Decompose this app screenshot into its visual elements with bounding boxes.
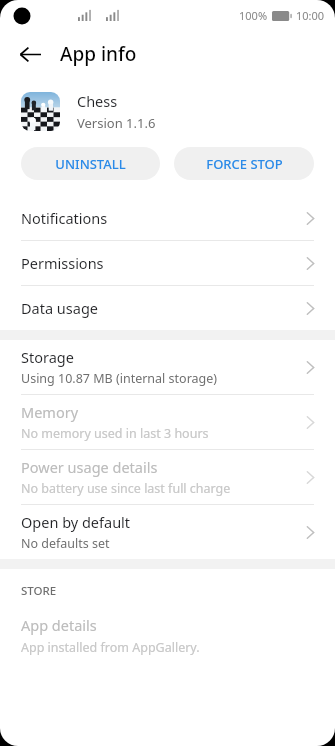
staticText: Notifications xyxy=(21,208,306,228)
staticText: No memory used in last 3 hours xyxy=(21,425,209,442)
staticText: No defaults set xyxy=(21,535,110,552)
staticText: App info xyxy=(60,41,137,67)
button[interactable]: UNINSTALL xyxy=(21,147,160,180)
staticText: UNINSTALL xyxy=(55,155,126,173)
staticText: 10:00 xyxy=(296,8,325,23)
staticText: FORCE STOP xyxy=(206,155,283,173)
staticText: App installed from AppGallery. xyxy=(21,639,200,656)
button[interactable]: Open by default xyxy=(0,505,335,559)
button[interactable]: Storage xyxy=(0,340,335,395)
staticText: Data usage xyxy=(21,298,306,318)
staticText: Using 10.87 MB (internal storage) xyxy=(21,370,218,387)
button[interactable]: Power usage details xyxy=(0,450,335,505)
button[interactable]: FORCE STOP xyxy=(174,147,314,180)
staticText: Chess xyxy=(77,91,118,111)
button[interactable]: Data usage xyxy=(0,286,335,330)
staticText: Power usage details xyxy=(21,457,158,477)
staticText: No battery use since last full charge xyxy=(21,480,231,497)
staticText: Permissions xyxy=(21,253,306,273)
staticText: Version 1.1.6 xyxy=(77,114,156,132)
button[interactable]: Permissions xyxy=(0,241,335,286)
button[interactable]: Notifications xyxy=(0,196,335,241)
staticText: App details xyxy=(21,615,97,635)
staticText: 100% xyxy=(239,8,268,23)
staticText: Memory xyxy=(21,402,79,422)
staticText: Open by default xyxy=(21,512,131,532)
staticText: Storage xyxy=(21,347,74,367)
staticText: STORE xyxy=(21,583,57,599)
button[interactable]: App details xyxy=(0,615,335,656)
button[interactable]: Back xyxy=(12,36,48,72)
button[interactable]: Memory xyxy=(0,395,335,450)
